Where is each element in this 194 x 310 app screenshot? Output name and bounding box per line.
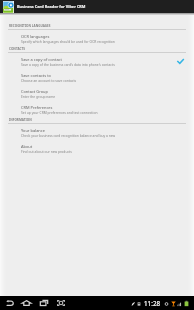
staticText: Set up your CRM preferences and test con…	[21, 110, 98, 114]
staticText: About	[21, 144, 33, 149]
button[interactable]: Recent apps	[36, 296, 51, 310]
staticText: Save contacts to	[21, 73, 51, 78]
staticText: Save a copy of contact	[21, 57, 62, 62]
staticText: Choose an account to save contacts	[21, 78, 77, 82]
button[interactable]: Save contacts to	[0, 69, 194, 85]
staticText: Enter the group name	[21, 94, 56, 98]
staticText: RECOGNITION LANGUAGES	[9, 24, 51, 28]
button[interactable]: Save a copy of contact	[0, 53, 194, 69]
button[interactable]: CRM Preferences	[0, 101, 194, 117]
staticText: Check your business card recognition bal…	[21, 133, 116, 137]
staticText: INFORMATION	[9, 118, 32, 122]
button[interactable]: Your balance	[0, 124, 194, 140]
button[interactable]: About	[0, 140, 194, 156]
button[interactable]: Contact Group	[0, 85, 194, 101]
staticText: Find out about our new products	[21, 149, 72, 153]
button[interactable]: Screenshot	[53, 296, 68, 310]
staticText: Contact Group	[21, 89, 48, 94]
staticText: OCR languages	[21, 34, 50, 39]
staticText: Save a copy of the business card's data …	[21, 62, 115, 66]
button[interactable]: Home	[19, 296, 34, 310]
staticText: Specify which languages should be used f…	[21, 39, 115, 43]
button[interactable]: OCR languages	[0, 30, 194, 46]
button[interactable]: Back	[2, 296, 17, 310]
staticText: CRM Preferences	[21, 105, 53, 110]
staticText: Your balance	[21, 128, 45, 133]
staticText: CONTACTS	[9, 47, 26, 51]
staticText: Business Card Reader for Viber CRM	[17, 4, 86, 9]
staticText: 11:28	[144, 299, 161, 308]
